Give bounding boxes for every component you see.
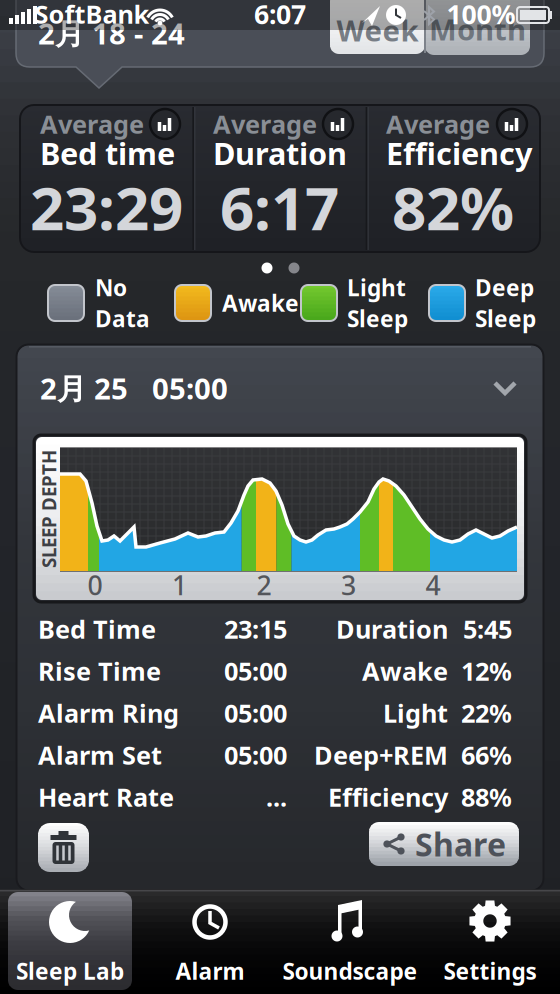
staticText: 2 xyxy=(256,567,271,603)
staticText: Heart Rate xyxy=(38,780,174,814)
staticText: 88% xyxy=(461,780,512,814)
staticText: Duration xyxy=(336,612,448,646)
staticText: 3 xyxy=(341,567,356,603)
staticText: Settings xyxy=(443,956,536,986)
staticText: Awake xyxy=(362,654,448,688)
staticText: Duration xyxy=(213,133,347,173)
staticText: Deep+REM xyxy=(314,738,448,772)
staticText: Light xyxy=(383,696,448,730)
staticText: Deep xyxy=(475,272,534,302)
staticText: SLEEP DEPTH xyxy=(0,497,108,521)
staticText: Average xyxy=(40,107,144,141)
button[interactable]: Week xyxy=(330,0,425,54)
button[interactable]: Month xyxy=(425,0,530,55)
staticText: Bed Time xyxy=(38,612,156,646)
staticText: 23:29 xyxy=(30,167,183,247)
button[interactable]: Share xyxy=(369,822,519,866)
staticText: 2月 18 - 24 xyxy=(38,13,185,52)
staticText: Bed time xyxy=(40,133,175,173)
staticText: Month xyxy=(429,9,526,48)
staticText: 1 xyxy=(172,567,187,603)
staticText: 23:15 xyxy=(224,612,287,646)
staticText: Efficiency xyxy=(386,133,533,173)
staticText: Rise Time xyxy=(38,654,161,688)
staticText: 4 xyxy=(425,567,440,603)
staticText: Alarm Ring xyxy=(38,696,179,730)
staticText: 66% xyxy=(461,738,512,772)
staticText: Efficiency xyxy=(328,780,448,814)
button[interactable]: Settings xyxy=(420,892,560,988)
button[interactable]: 2月 25 05:00 xyxy=(17,362,543,414)
staticText: 05:00 xyxy=(224,696,287,730)
staticText: 12% xyxy=(461,654,512,688)
staticText: Awake xyxy=(222,288,299,318)
staticText: Soundscape xyxy=(282,956,417,986)
staticText: 6:17 xyxy=(220,167,339,247)
staticText: 05:00 xyxy=(224,738,287,772)
staticText: Alarm Set xyxy=(38,738,162,772)
button[interactable]: Alarm xyxy=(140,892,280,988)
staticText: Data xyxy=(95,303,150,334)
button[interactable]: Soundscape xyxy=(280,892,420,988)
button[interactable]: Sleep Lab xyxy=(0,892,140,988)
staticText: Sleep xyxy=(475,303,536,334)
staticText: 22% xyxy=(461,696,512,730)
staticText: Light xyxy=(347,272,406,302)
staticText: SoftBank xyxy=(34,0,149,31)
staticText: ... xyxy=(266,780,287,814)
staticText: 0 xyxy=(87,567,102,603)
button[interactable]: Delete xyxy=(38,823,89,872)
staticText: Average xyxy=(213,107,317,141)
staticText: Share xyxy=(415,823,506,865)
staticText: Alarm xyxy=(175,956,244,986)
staticText: 6:07 xyxy=(254,0,306,32)
staticText: 05:00 xyxy=(224,654,287,688)
staticText: Average xyxy=(386,107,490,141)
staticText: 5:45 xyxy=(463,612,512,646)
staticText: Week xyxy=(336,10,418,49)
staticText: 2月 25 05:00 xyxy=(40,368,228,407)
staticText: Sleep xyxy=(347,303,408,334)
staticText: 82% xyxy=(392,167,514,247)
staticText: 100% xyxy=(446,0,515,32)
staticText: Sleep Lab xyxy=(16,956,124,986)
staticText: No xyxy=(95,272,127,302)
